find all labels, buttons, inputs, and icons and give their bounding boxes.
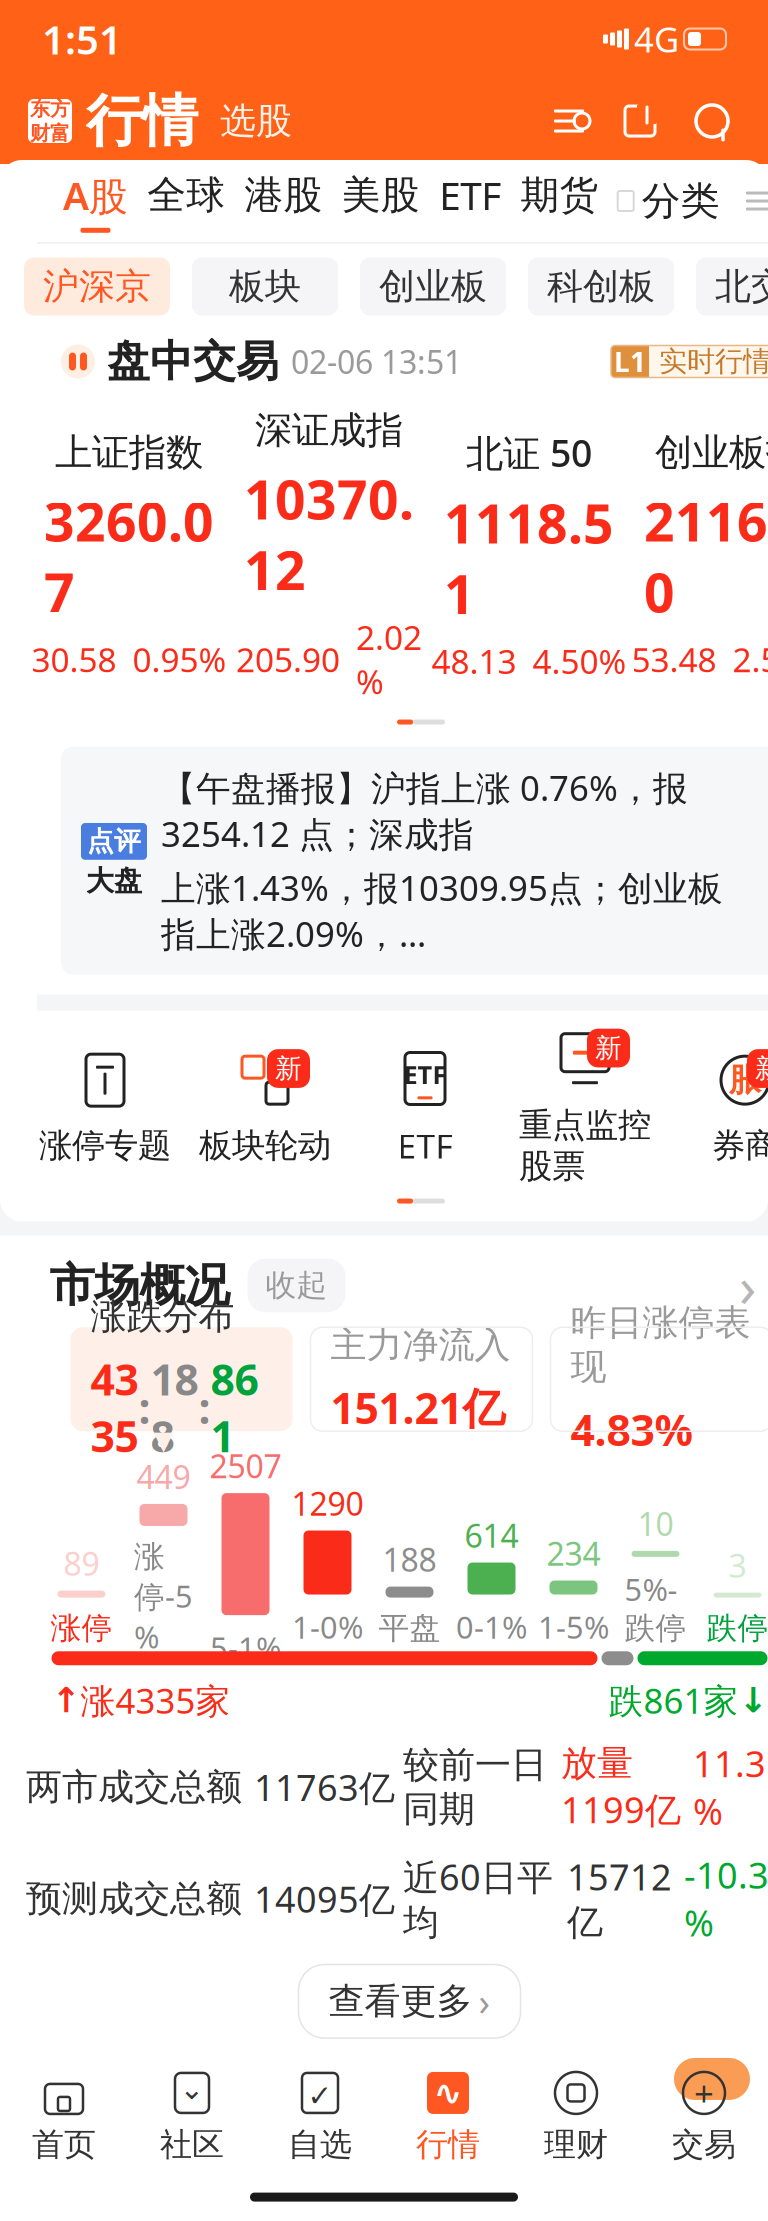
staticText: 选股: [220, 99, 292, 143]
button[interactable]: 查看更多: [298, 1964, 520, 2038]
staticText: 涨跌分布: [90, 1294, 234, 1339]
staticText: 0-1%: [456, 1606, 527, 1647]
button[interactable]: 点评: [61, 746, 768, 975]
button[interactable]: ETF: [439, 161, 501, 241]
staticText: 5%-跌停: [624, 1569, 686, 1647]
staticText: 2.02%: [356, 615, 422, 703]
staticText: 2507: [209, 1445, 281, 1487]
button[interactable]: 首页: [0, 2070, 128, 2164]
staticText: 跌861家: [608, 1677, 738, 1723]
staticText: 放量1199亿: [561, 1741, 681, 1833]
staticText: 涨停-5%: [134, 1538, 193, 1657]
staticText: 188: [150, 1351, 198, 1464]
button[interactable]: 港股: [245, 163, 323, 239]
button[interactable]: 更多市场概况: [725, 1263, 768, 1307]
staticText: ›: [739, 1248, 756, 1323]
staticText: 涨停: [50, 1610, 112, 1647]
staticText: 4G: [634, 16, 679, 62]
button[interactable]: 分类: [618, 169, 720, 233]
staticText: 1:51: [42, 12, 122, 65]
staticText: 理财: [544, 2125, 608, 2164]
staticText: 实时行情: [659, 344, 768, 379]
button[interactable]: 创业板: [360, 257, 506, 315]
staticText: L1: [614, 343, 646, 380]
staticText: 收起: [265, 1267, 327, 1304]
staticText: 跌停: [706, 1610, 768, 1647]
button[interactable]: ∿: [384, 2070, 512, 2164]
staticText: 449: [136, 1455, 190, 1498]
button[interactable]: 涨停专题: [25, 1049, 185, 1166]
staticText: 大盘: [86, 864, 142, 898]
staticText: 5-1%: [210, 1627, 281, 1668]
button[interactable]: 期货: [520, 163, 598, 239]
staticText: 首页: [32, 2125, 96, 2164]
staticText: 行情: [86, 87, 198, 155]
button[interactable]: 涨跌分布: [70, 1327, 292, 1431]
staticText: 205.90: [236, 637, 340, 681]
button[interactable]: 分享: [596, 93, 668, 149]
button[interactable]: 北交所: [696, 257, 768, 315]
staticText: 上证指数: [55, 430, 203, 475]
button[interactable]: 板块: [192, 257, 338, 315]
staticText: 昨日涨停表现: [570, 1301, 750, 1389]
staticText: 板块: [229, 264, 301, 309]
button[interactable]: 全球: [147, 163, 225, 239]
staticText: ∿: [433, 2073, 462, 2113]
button[interactable]: 昨日涨停表现: [550, 1327, 768, 1431]
staticText: 151.21亿: [330, 1379, 505, 1436]
staticText: ETF: [397, 1123, 452, 1168]
staticText: 盘中交易: [107, 335, 279, 388]
staticText: 10370.12: [244, 463, 414, 605]
staticText: ›: [478, 1976, 490, 2026]
staticText: 【午盘播报】沪指上涨 0.76%，报 3254.12 点；深成指: [161, 764, 688, 857]
staticText: 89: [63, 1542, 99, 1585]
staticText: 胀: [729, 1060, 761, 1100]
staticText: 深证成指: [255, 407, 403, 453]
staticText: 新: [595, 1032, 622, 1064]
staticText: 社区: [160, 2125, 224, 2164]
staticText: 1-5%: [538, 1606, 609, 1647]
staticText: 查看更多: [328, 1979, 472, 2023]
staticText: 两市成交总额: [26, 1765, 242, 1809]
staticText: 3: [728, 1544, 746, 1587]
staticText: 近60日平均: [403, 1853, 553, 1945]
button[interactable]: 理财: [512, 2070, 640, 2164]
staticText: 4335: [90, 1351, 138, 1464]
staticText: ETF: [403, 1058, 446, 1091]
staticText: 平盘: [378, 1610, 440, 1647]
staticText: 行情: [416, 2125, 480, 2164]
staticText: 北交所: [715, 264, 768, 309]
staticText: 4.83%: [570, 1401, 692, 1458]
button[interactable]: 选股: [198, 89, 292, 153]
button[interactable]: 胀: [665, 1049, 768, 1166]
button[interactable]: 新: [505, 1029, 665, 1187]
staticText: 创业板指: [655, 430, 768, 475]
button[interactable]: 收起: [247, 1259, 345, 1312]
staticText: 14095亿: [254, 1875, 395, 1923]
button[interactable]: 筛选设置: [542, 94, 596, 148]
button[interactable]: 沪深京: [24, 257, 170, 315]
button[interactable]: ✓: [256, 2070, 384, 2164]
staticText: ▾: [153, 1416, 173, 1462]
button[interactable]: 搜索: [668, 93, 740, 149]
staticText: ↑: [51, 1681, 80, 1720]
button[interactable]: ⌄: [128, 2070, 256, 2164]
staticText: 1118.51: [444, 487, 614, 629]
button[interactable]: +: [640, 2070, 768, 2164]
staticText: 234: [546, 1532, 600, 1574]
button[interactable]: 新: [185, 1049, 345, 1166]
button[interactable]: 主力净流入: [310, 1327, 532, 1431]
button[interactable]: 美股: [342, 163, 420, 239]
staticText: 科创板: [547, 264, 655, 309]
staticText: 分类: [642, 177, 720, 225]
button[interactable]: 更多分类: [739, 181, 768, 221]
staticText: ⌄: [179, 2072, 204, 2106]
button[interactable]: ETF: [345, 1047, 505, 1168]
staticText: 点评: [87, 825, 141, 858]
staticText: 0.95%: [132, 637, 226, 681]
button[interactable]: A股: [63, 161, 128, 241]
button[interactable]: 科创板: [528, 257, 674, 315]
staticText: :: [138, 1379, 150, 1436]
staticText: 861: [210, 1351, 258, 1464]
staticText: 板块轮动: [199, 1125, 331, 1166]
